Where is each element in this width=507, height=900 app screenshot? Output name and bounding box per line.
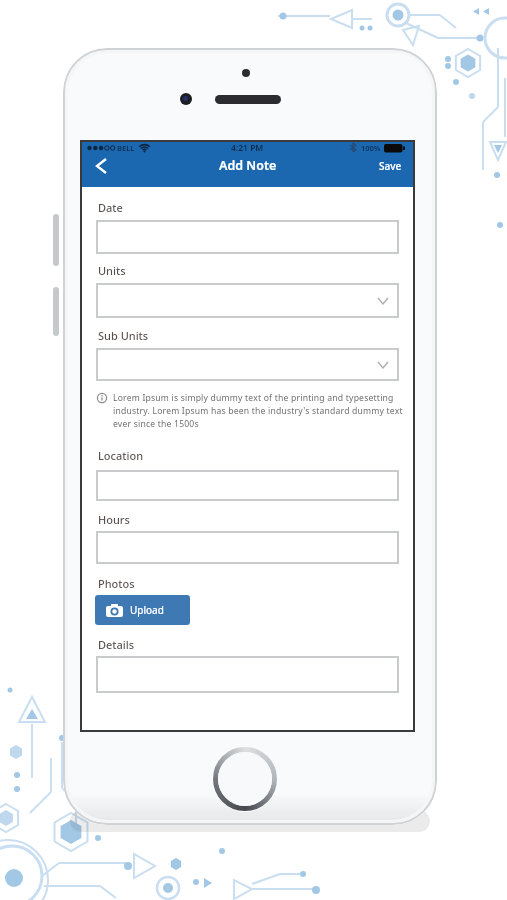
staticText: Add Note xyxy=(219,157,277,174)
staticText: Upload xyxy=(130,603,164,617)
button[interactable] xyxy=(96,531,399,564)
staticText: Units xyxy=(98,263,126,278)
staticText: Lorem Ipsum is simply dummy text of the … xyxy=(113,392,394,404)
button[interactable] xyxy=(96,656,399,693)
staticText: Date xyxy=(98,200,123,215)
staticText: 100% xyxy=(361,143,381,153)
button[interactable] xyxy=(96,348,399,381)
button[interactable] xyxy=(96,283,399,318)
staticText: industry. Lorem Ipsum has been the indus… xyxy=(113,405,403,417)
button[interactable]: Upload xyxy=(95,595,190,625)
staticText: BELL xyxy=(117,143,135,153)
staticText: Details xyxy=(98,637,135,652)
staticText: Photos xyxy=(98,576,135,591)
staticText: 4:21 PM xyxy=(231,142,264,153)
button[interactable] xyxy=(96,220,399,254)
staticText: Hours xyxy=(98,512,130,527)
staticText: Save xyxy=(379,159,402,173)
button[interactable] xyxy=(96,470,399,501)
staticText: Sub Units xyxy=(98,328,149,343)
staticText: ever since the 1500s xyxy=(113,418,199,430)
staticText: Location xyxy=(98,448,144,463)
button[interactable] xyxy=(88,153,114,179)
button[interactable]: Save xyxy=(370,153,410,179)
